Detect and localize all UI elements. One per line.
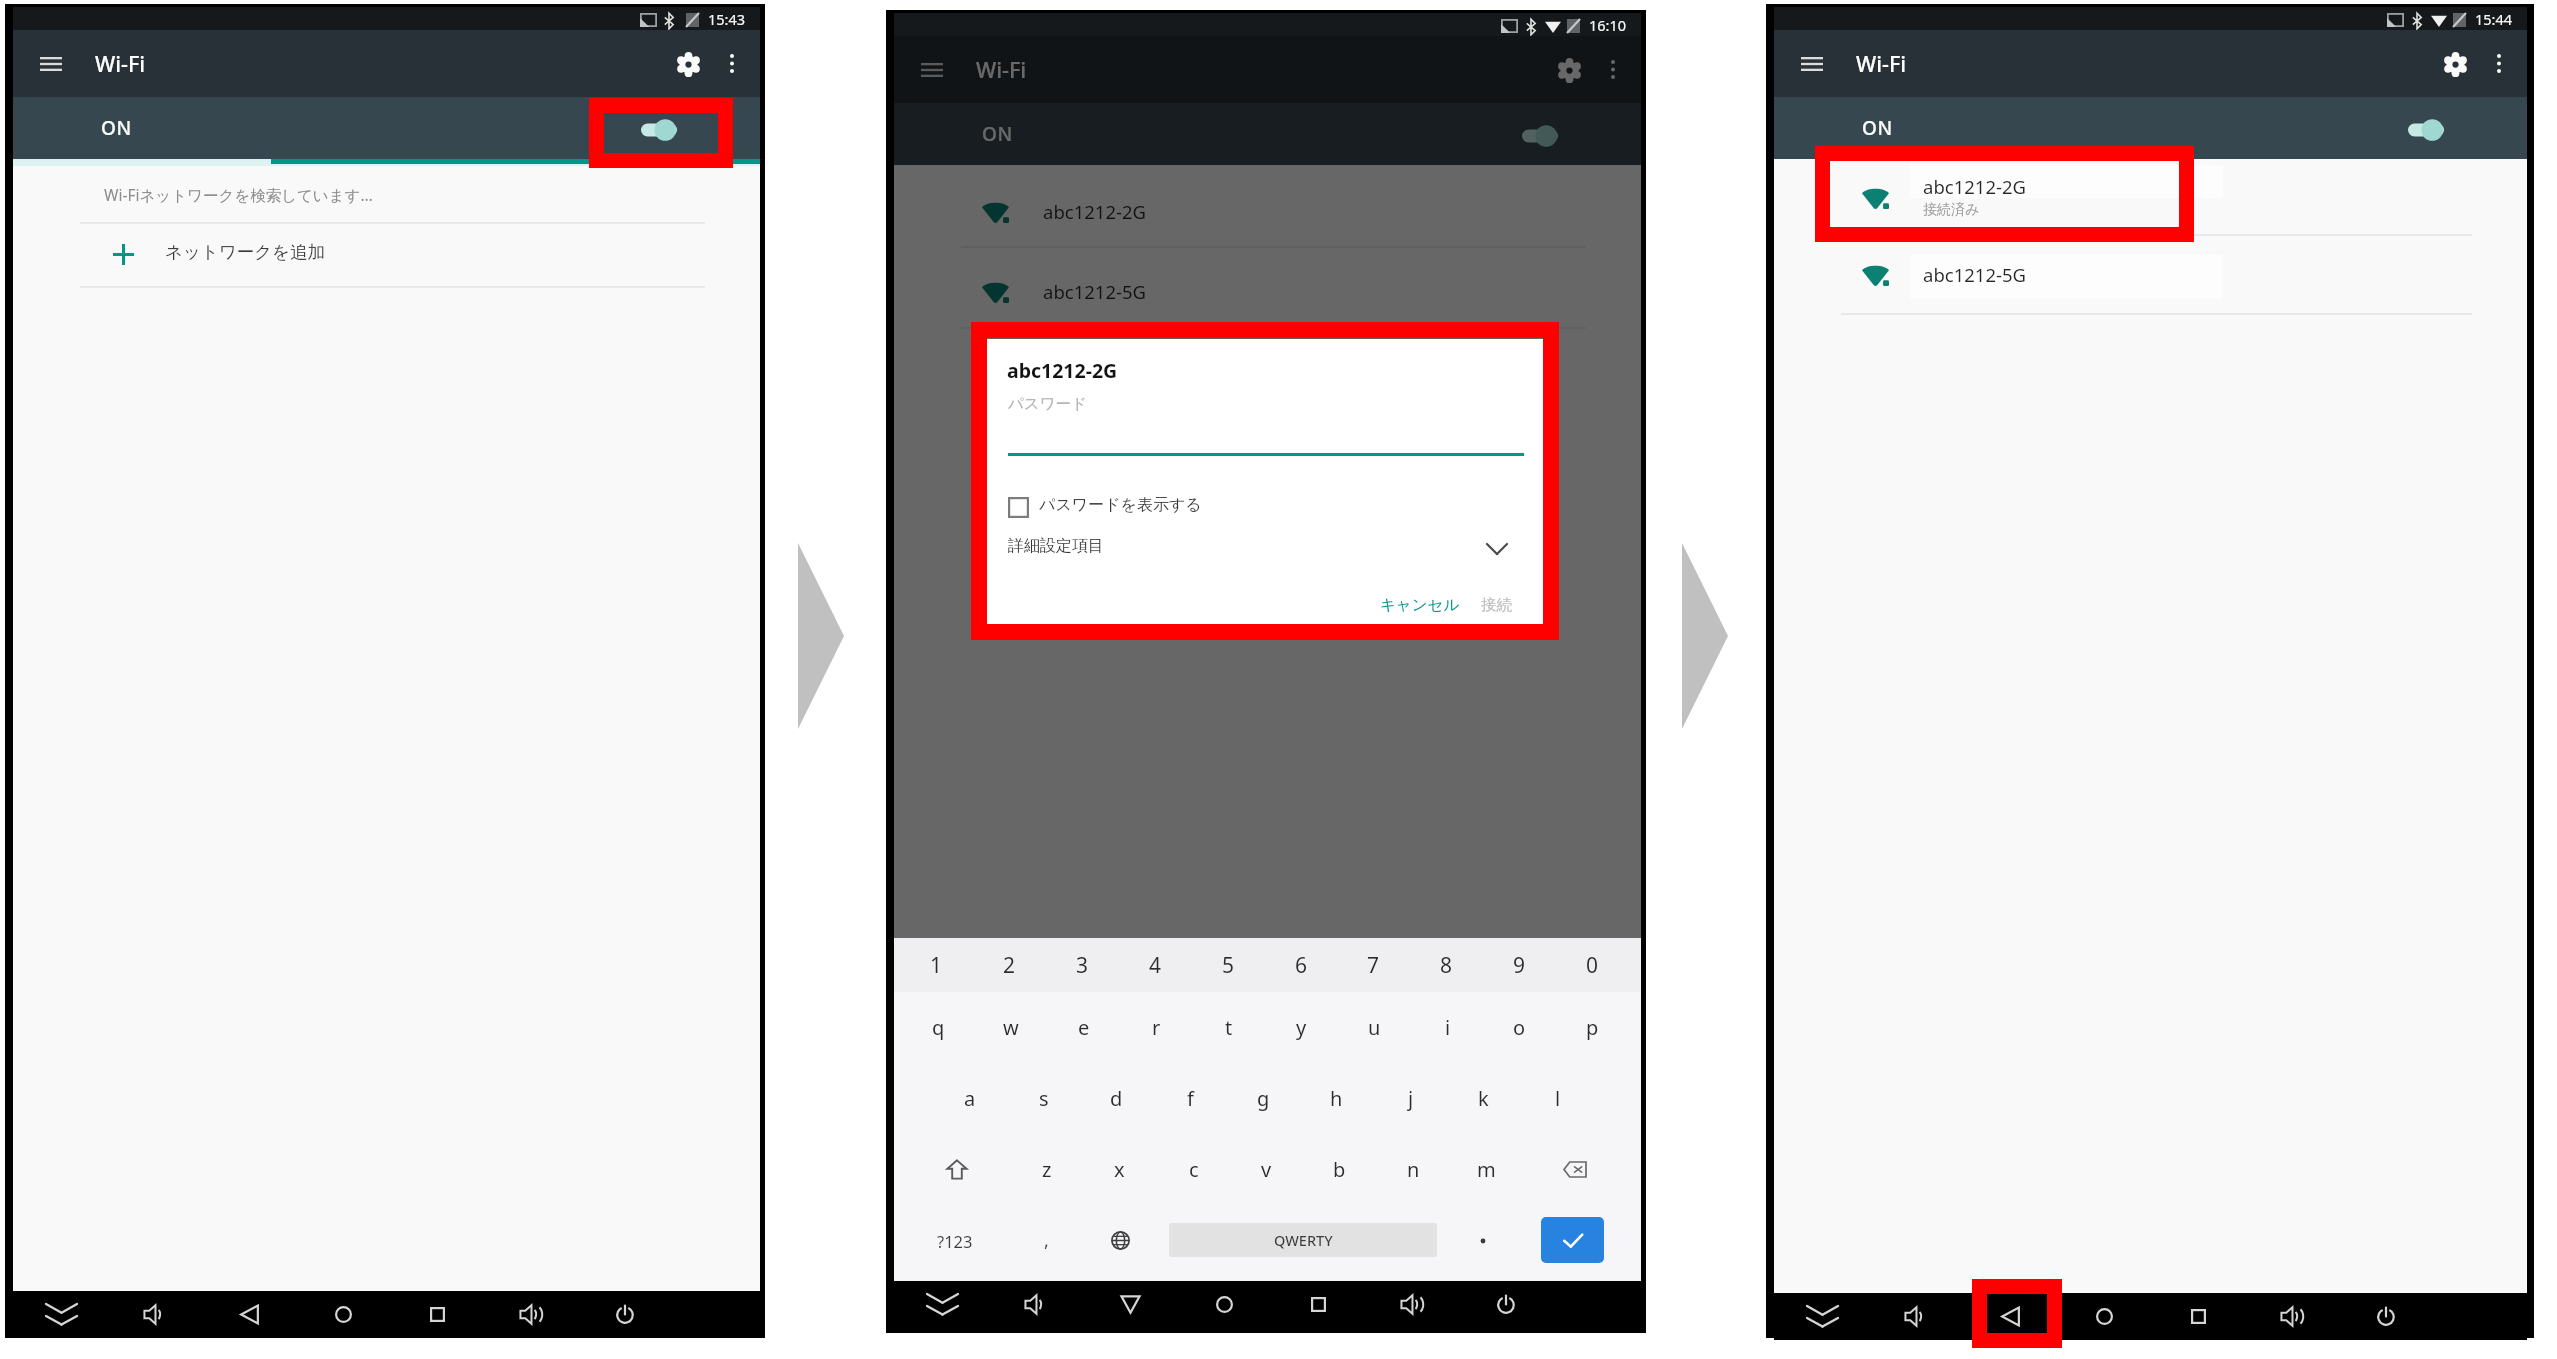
staticText: , <box>1044 1228 1049 1253</box>
button[interactable]: abc1212-2G <box>894 176 1641 248</box>
button[interactable]: Back <box>1963 1293 2057 1340</box>
button[interactable]: Recents <box>2151 1293 2245 1340</box>
staticText: 3 <box>1076 951 1089 980</box>
button[interactable]: h <box>1300 1063 1373 1134</box>
button[interactable]: Backspace <box>1537 1134 1612 1205</box>
staticText: abc1212-2G <box>1007 357 1118 384</box>
button[interactable]: e <box>1047 992 1120 1063</box>
button[interactable]: m <box>1449 1134 1524 1205</box>
staticText: d <box>1110 1085 1123 1112</box>
button[interactable]: 7 <box>1337 938 1409 992</box>
button[interactable]: Settings <box>665 41 711 87</box>
button[interactable]: ON <box>1774 97 2527 159</box>
button[interactable]: Shift <box>919 1134 994 1205</box>
button[interactable]: Recents <box>1271 1281 1365 1328</box>
staticText: 4 <box>1149 951 1162 980</box>
button[interactable]: z <box>1009 1134 1084 1205</box>
button[interactable]: l <box>1521 1063 1594 1134</box>
button[interactable]: Open navigation drawer <box>1788 43 1836 85</box>
button[interactable]: n <box>1376 1134 1451 1205</box>
button[interactable]: ?123 <box>915 1205 995 1276</box>
button[interactable]: o <box>1483 992 1556 1063</box>
button[interactable]: QWERTY <box>1169 1223 1437 1257</box>
button[interactable]: Collapse <box>14 1291 108 1338</box>
button[interactable] <box>1451 1205 1515 1276</box>
button[interactable]: 4 <box>1119 938 1191 992</box>
button[interactable]: Home <box>2057 1293 2151 1340</box>
button[interactable]: Power <box>2339 1293 2433 1340</box>
button[interactable]: a <box>933 1063 1006 1134</box>
button[interactable]: u <box>1338 992 1411 1063</box>
button[interactable]: Volume up <box>1365 1281 1459 1328</box>
button[interactable]: x <box>1082 1134 1157 1205</box>
staticText: 15:44 <box>2475 9 2513 29</box>
button[interactable]: Volume down <box>108 1291 202 1338</box>
button[interactable]: abc1212-2G <box>1774 159 2527 237</box>
button[interactable]: 1 <box>900 938 972 992</box>
staticText: Wi-Fi <box>95 49 146 78</box>
button[interactable]: 詳細設定項目 <box>1006 533 1524 565</box>
button[interactable]: b <box>1302 1134 1377 1205</box>
button[interactable]: Home <box>1177 1281 1271 1328</box>
button[interactable]: c <box>1156 1134 1231 1205</box>
button[interactable]: Volume down <box>989 1281 1083 1328</box>
button[interactable]: q <box>902 992 975 1063</box>
button[interactable]: Change keyboard language <box>1088 1205 1152 1276</box>
button[interactable]: ON <box>13 97 760 159</box>
button[interactable]: i <box>1411 992 1484 1063</box>
button[interactable]: ネットワークを追加 <box>13 223 760 286</box>
button[interactable]: Recents <box>390 1291 484 1338</box>
staticText: ON <box>1862 115 1893 141</box>
button[interactable]: Home <box>296 1291 390 1338</box>
button[interactable]: Hide keyboard <box>1083 1281 1177 1328</box>
staticText: e <box>1078 1014 1090 1041</box>
button[interactable]: キャンセル <box>1372 591 1468 619</box>
staticText: x <box>1114 1156 1125 1183</box>
button[interactable]: More options <box>710 41 754 85</box>
button[interactable]: v <box>1229 1134 1304 1205</box>
staticText: b <box>1333 1156 1346 1183</box>
button[interactable]: 5 <box>1192 938 1264 992</box>
button[interactable]: 6 <box>1265 938 1337 992</box>
button[interactable]: abc1212-5G <box>1774 239 2527 311</box>
button[interactable]: 3 <box>1046 938 1118 992</box>
button[interactable]: 9 <box>1483 938 1555 992</box>
button[interactable]: Settings <box>2432 41 2478 87</box>
button[interactable]: Enter <box>1541 1217 1604 1263</box>
button[interactable]: 2 <box>973 938 1045 992</box>
staticText: 16:10 <box>1589 15 1627 35</box>
button[interactable]: 8 <box>1410 938 1482 992</box>
button[interactable]: Back <box>202 1291 296 1338</box>
button[interactable]: Power <box>1459 1281 1553 1328</box>
staticText: g <box>1257 1085 1270 1112</box>
button[interactable]: Open navigation drawer <box>27 43 75 85</box>
button[interactable]: d <box>1080 1063 1153 1134</box>
button[interactable]: Volume up <box>484 1291 578 1338</box>
button[interactable]: 接続 <box>1468 591 1524 619</box>
button[interactable]: , <box>1014 1205 1078 1276</box>
button[interactable]: Volume down <box>1869 1293 1963 1340</box>
button[interactable]: g <box>1227 1063 1300 1134</box>
button[interactable]: abc1212-5G <box>894 256 1641 328</box>
button[interactable]: ON <box>894 103 1641 165</box>
staticText: l <box>1555 1085 1561 1112</box>
button[interactable]: Power <box>578 1291 672 1338</box>
button[interactable]: f <box>1154 1063 1227 1134</box>
button[interactable]: k <box>1447 1063 1520 1134</box>
button[interactable]: 0 <box>1556 938 1628 992</box>
button[interactable]: t <box>1192 992 1265 1063</box>
button[interactable]: y <box>1265 992 1338 1063</box>
button[interactable]: w <box>974 992 1047 1063</box>
button[interactable]: Collapse <box>1775 1293 1869 1340</box>
button[interactable]: s <box>1007 1063 1080 1134</box>
button[interactable]: Collapse <box>895 1281 989 1328</box>
button[interactable]: p <box>1556 992 1629 1063</box>
button[interactable]: パスワードを表示する <box>1006 493 1524 523</box>
button[interactable]: Settings <box>1546 47 1592 93</box>
button[interactable]: More options <box>1591 47 1635 91</box>
button[interactable]: Open navigation drawer <box>908 49 956 91</box>
button[interactable]: More options <box>2477 41 2521 85</box>
button[interactable]: Volume up <box>2245 1293 2339 1340</box>
button[interactable]: j <box>1374 1063 1447 1134</box>
button[interactable]: r <box>1120 992 1193 1063</box>
